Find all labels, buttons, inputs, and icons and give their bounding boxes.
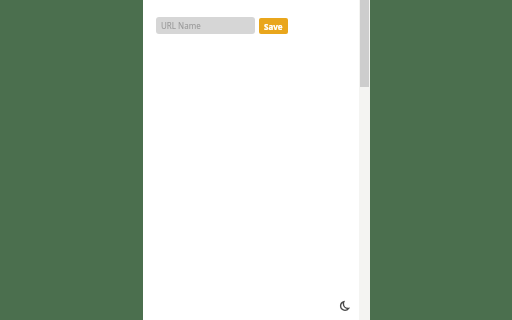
button[interactable]: Toggle dark mode bbox=[337, 298, 353, 314]
staticText: Save bbox=[264, 21, 283, 32]
staticText: URL Name bbox=[161, 20, 201, 31]
button[interactable]: URL Name bbox=[156, 17, 255, 34]
button[interactable]: Save bbox=[259, 18, 288, 34]
